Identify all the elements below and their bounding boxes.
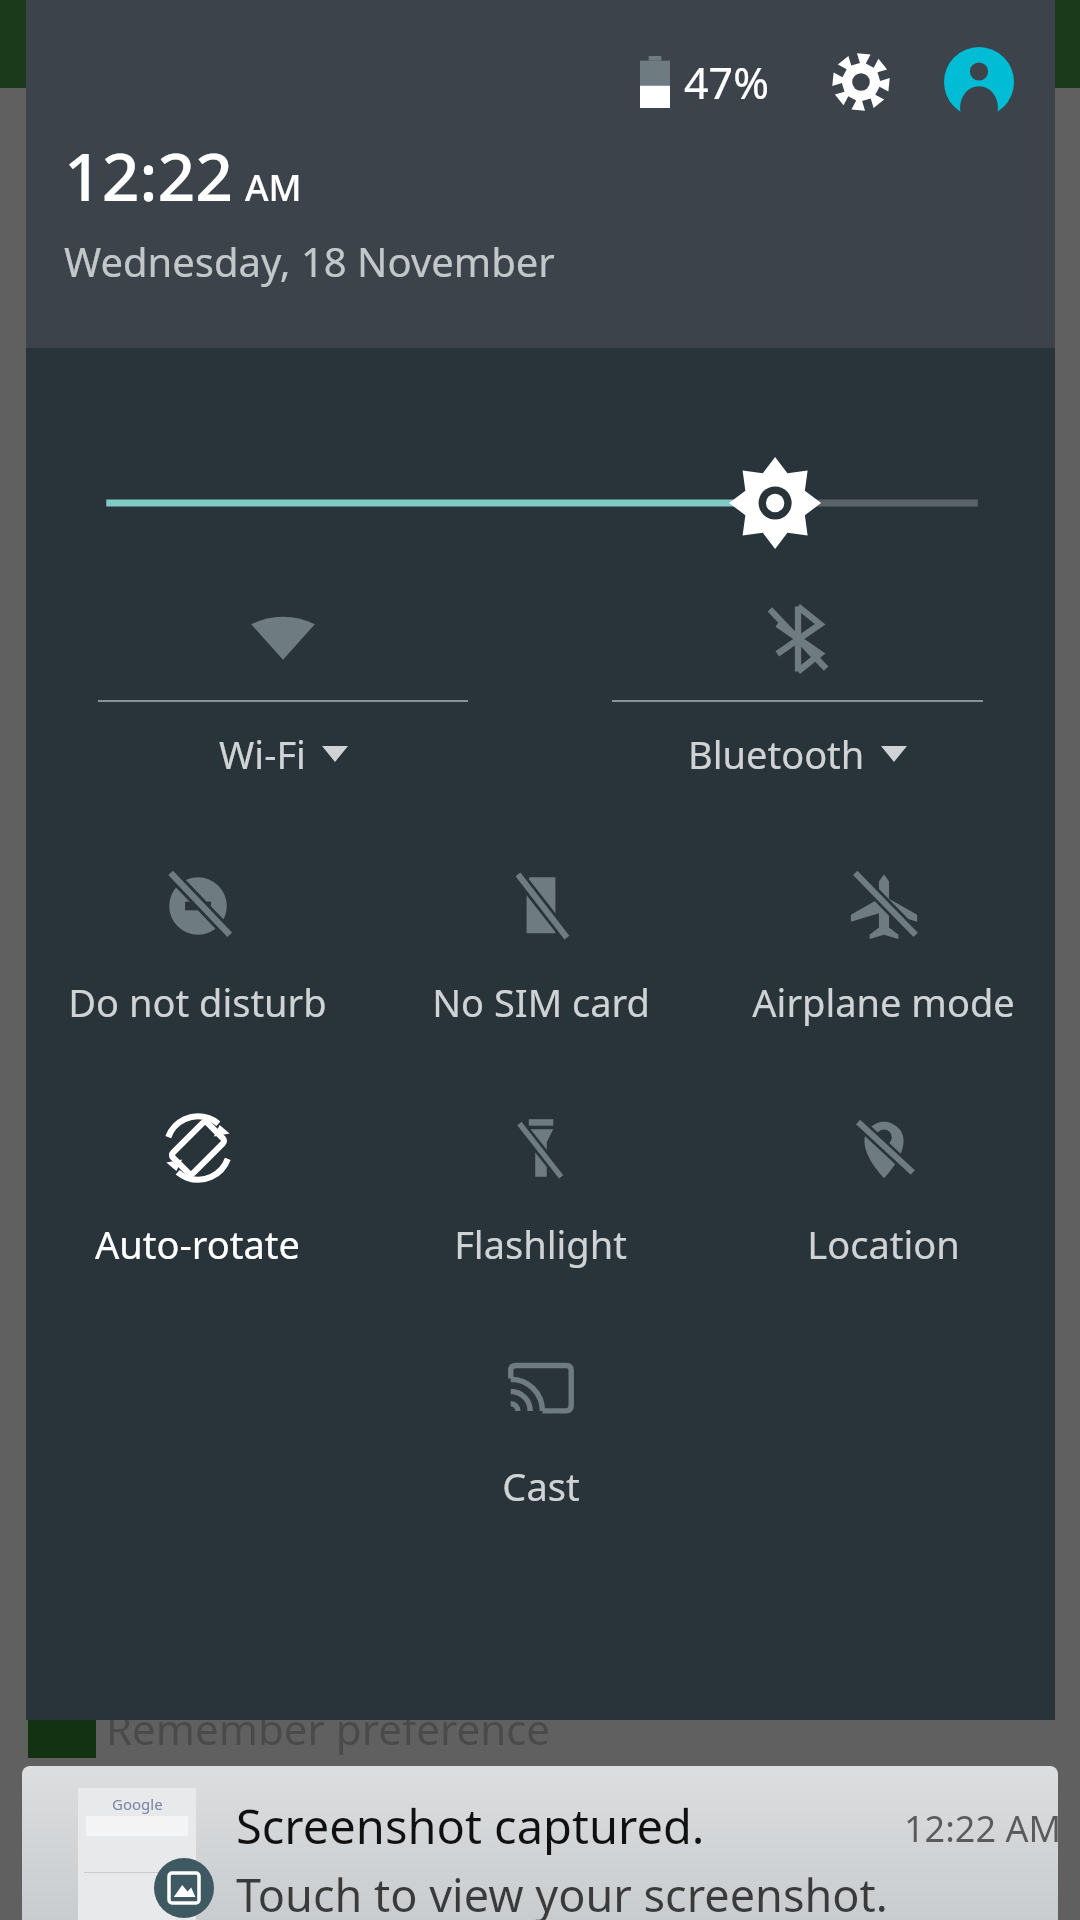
- button[interactable]: Airplane mode: [712, 856, 1055, 1072]
- staticText: Auto-rotate: [95, 1218, 300, 1270]
- staticText: 12:22 AM: [904, 1804, 1058, 1853]
- staticText: AM: [245, 163, 302, 212]
- button[interactable]: Flashlight: [369, 1098, 712, 1314]
- staticText: Touch to view your screenshot.: [236, 1864, 888, 1920]
- staticText: Google: [112, 1794, 163, 1814]
- staticText: Remember preference: [106, 1700, 550, 1757]
- staticText: 12:22: [64, 130, 233, 220]
- staticText: Location: [807, 1218, 960, 1270]
- staticText: Wi-Fi: [219, 728, 306, 780]
- staticText: Cast: [502, 1460, 580, 1512]
- staticText: Screenshot captured.: [236, 1794, 705, 1858]
- button[interactable]: User profile: [941, 44, 1017, 120]
- staticText: Wednesday, 18 November: [64, 234, 555, 288]
- button[interactable]: Auto-rotate: [26, 1098, 369, 1314]
- button[interactable]: Cast: [369, 1340, 712, 1556]
- staticText: 47%: [684, 53, 769, 112]
- button[interactable]: Bluetooth: [540, 592, 1055, 822]
- button[interactable]: No SIM card: [369, 856, 712, 1072]
- button[interactable]: Do not disturb: [26, 856, 369, 1072]
- button[interactable]: Settings: [825, 46, 897, 118]
- button[interactable]: Wi-Fi: [26, 592, 540, 822]
- staticText: Airplane mode: [752, 976, 1015, 1028]
- button[interactable]: Google: [22, 1766, 1058, 1920]
- button[interactable]: Brightness: [26, 448, 1055, 558]
- staticText: Do not disturb: [68, 976, 327, 1028]
- staticText: Flashlight: [454, 1218, 627, 1270]
- button[interactable]: Location: [712, 1098, 1055, 1314]
- staticText: Bluetooth: [688, 728, 865, 780]
- staticText: No SIM card: [432, 976, 650, 1028]
